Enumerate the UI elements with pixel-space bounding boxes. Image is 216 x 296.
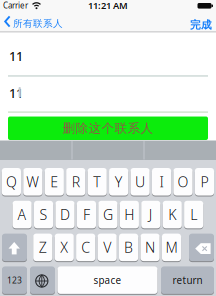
- staticText: U: [135, 172, 145, 191]
- button[interactable]: A: [12, 201, 32, 228]
- button[interactable]: Z: [33, 234, 52, 261]
- staticText: F: [83, 205, 90, 224]
- staticText: 完成: [190, 18, 212, 32]
- staticText: R: [72, 172, 80, 191]
- button[interactable]: 11: [9, 49, 216, 63]
- staticText: 11:21 AM: [88, 0, 128, 12]
- staticText: W: [26, 172, 39, 191]
- button[interactable]: O: [173, 168, 193, 195]
- staticText: L: [190, 205, 197, 224]
- staticText: A: [18, 205, 27, 224]
- staticText: S: [40, 205, 48, 224]
- button[interactable]: 删除这个联系人: [8, 116, 208, 140]
- button[interactable]: T: [88, 168, 107, 195]
- staticText: 123: [7, 274, 22, 286]
- staticText: Q: [6, 172, 17, 191]
- button[interactable]: 所有联系人: [0, 0, 64, 32]
- staticText: V: [103, 238, 111, 257]
- button[interactable]: C: [76, 234, 95, 261]
- button[interactable]: E: [45, 168, 64, 195]
- staticText: E: [50, 172, 58, 191]
- button[interactable]: R: [66, 168, 85, 195]
- button[interactable]: N: [140, 234, 160, 261]
- button[interactable]: X: [55, 234, 74, 261]
- button[interactable]: B: [119, 234, 138, 261]
- button[interactable]: F: [77, 201, 96, 228]
- staticText: Z: [39, 238, 47, 257]
- staticText: M: [165, 238, 177, 257]
- button[interactable]: P: [195, 168, 214, 195]
- button[interactable]: 11: [9, 86, 216, 100]
- staticText: X: [60, 238, 68, 257]
- button[interactable]: H: [120, 201, 139, 228]
- staticText: D: [60, 205, 70, 224]
- button[interactable]: M: [162, 234, 181, 261]
- staticText: P: [200, 172, 208, 191]
- staticText: 11: [9, 84, 23, 102]
- staticText: N: [145, 238, 155, 257]
- button[interactable]: Delete: [189, 234, 214, 261]
- button[interactable]: K: [163, 201, 182, 228]
- staticText: Y: [115, 172, 123, 191]
- button[interactable]: V: [97, 234, 117, 261]
- button[interactable]: Y: [109, 168, 128, 195]
- button[interactable]: L: [184, 201, 203, 228]
- staticText: 删除这个联系人: [62, 120, 153, 136]
- staticText: H: [124, 205, 134, 224]
- button[interactable]: J: [141, 201, 160, 228]
- staticText: I: [160, 172, 164, 191]
- button[interactable]: Next keyboard: [30, 266, 55, 294]
- button[interactable]: space: [57, 266, 157, 294]
- button[interactable]: U: [130, 168, 150, 195]
- staticText: space: [93, 273, 121, 287]
- button[interactable]: I: [152, 168, 171, 195]
- button[interactable]: D: [55, 201, 75, 228]
- button[interactable]: W: [23, 168, 42, 195]
- button[interactable]: return: [161, 266, 214, 294]
- staticText: K: [168, 205, 176, 224]
- staticText: C: [81, 238, 90, 257]
- staticText: return: [172, 273, 202, 287]
- staticText: O: [177, 172, 188, 191]
- staticText: J: [149, 205, 153, 224]
- button[interactable]: 123: [2, 266, 27, 294]
- staticText: B: [124, 238, 133, 257]
- button[interactable]: G: [98, 201, 117, 228]
- staticText: T: [93, 172, 101, 191]
- staticText: 所有联系人: [13, 17, 63, 30]
- button[interactable]: Shift: [2, 234, 27, 261]
- button[interactable]: S: [34, 201, 53, 228]
- staticText: Carrier: [3, 0, 28, 11]
- staticText: G: [103, 205, 113, 224]
- button[interactable]: 完成: [172, 19, 212, 31]
- button[interactable]: Q: [2, 168, 21, 195]
- staticText: 11: [9, 47, 23, 65]
